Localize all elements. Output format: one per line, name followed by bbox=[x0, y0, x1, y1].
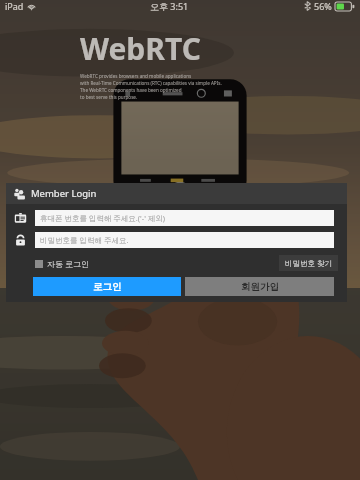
staticText: Member Login bbox=[31, 187, 97, 200]
staticText: iPad bbox=[5, 0, 24, 12]
staticText: 휴대폰 번호를 입력해 주세요.('-' 제외) bbox=[40, 213, 166, 223]
button[interactable]: 회원가입 bbox=[185, 277, 334, 296]
button[interactable]: 휴대폰 번호를 입력해 주세요.('-' 제외) bbox=[35, 210, 334, 226]
button[interactable]: 비밀번호를 입력해 주세요. bbox=[35, 232, 334, 248]
staticText: 회원가입 bbox=[241, 281, 279, 293]
staticText: 56% bbox=[314, 0, 332, 12]
staticText: 오후 3:51 bbox=[150, 0, 189, 12]
staticText: 자동 로그인 bbox=[47, 258, 90, 269]
staticText: to best serve this purpose. bbox=[80, 94, 138, 100]
button[interactable]: 자동 로그인 bbox=[35, 258, 90, 269]
button[interactable]: 비밀번호 찾기 bbox=[279, 255, 338, 271]
staticText: WebRTC provides browsers and mobile appl… bbox=[80, 73, 192, 79]
staticText: 비밀번호를 입력해 주세요. bbox=[40, 235, 129, 245]
button[interactable]: 로그인 bbox=[33, 277, 181, 296]
staticText: 로그인 bbox=[93, 281, 122, 293]
staticText: WebRTC bbox=[80, 28, 201, 69]
staticText: with Real-Time Communications (RTC) capa… bbox=[80, 80, 222, 86]
staticText: The WebRTC components have been optimize… bbox=[80, 87, 182, 93]
staticText: 비밀번호 찾기 bbox=[285, 258, 332, 268]
